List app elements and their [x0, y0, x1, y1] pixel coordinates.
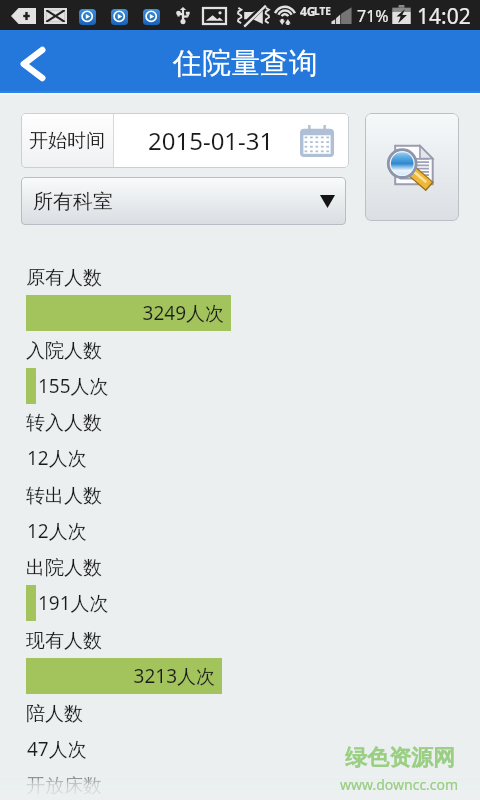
staticText: 开放床数 — [26, 774, 102, 798]
staticText: 所有科室 — [33, 189, 113, 214]
staticText: 191人次 — [38, 590, 109, 616]
staticText: www.downcc.com — [340, 775, 459, 794]
button[interactable]: Back — [0, 30, 64, 93]
button[interactable]: 开始时间 — [21, 113, 349, 168]
staticText: 12人次 — [27, 445, 87, 471]
staticText: 71% — [357, 5, 389, 27]
staticText: 陪人数 — [26, 702, 83, 726]
staticText: 4G — [300, 3, 316, 19]
staticText: 现有人数 — [26, 629, 102, 653]
staticText: 47人次 — [27, 736, 87, 762]
staticText: 3249人次 — [26, 300, 224, 326]
button[interactable]: Search — [365, 113, 459, 221]
staticText: 原有人数 — [26, 266, 102, 290]
staticText: 155人次 — [38, 373, 109, 399]
staticText: 3213人次 — [26, 663, 215, 689]
staticText: 转入人数 — [26, 411, 102, 435]
staticText: 绿色资源网 — [345, 744, 455, 772]
staticText: LTE — [314, 4, 331, 18]
staticText: 住院量查询 — [173, 45, 318, 82]
button[interactable]: 所有科室 — [21, 177, 346, 225]
staticText: 2015-01-31 — [148, 124, 274, 157]
staticText: 12人次 — [27, 518, 87, 544]
staticText: 入院人数 — [26, 339, 102, 363]
staticText: 出院人数 — [26, 556, 102, 580]
staticText: 14:02 — [417, 2, 471, 31]
staticText: 开始时间 — [29, 129, 105, 153]
staticText: 转出人数 — [26, 484, 102, 508]
